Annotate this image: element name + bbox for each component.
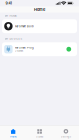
- staticText: Home: [10, 135, 16, 138]
- staticText: Settings: [61, 135, 71, 138]
- staticText: My Smart Bulb: [15, 25, 34, 28]
- staticText: Scenes: [36, 135, 43, 138]
- staticText: My Smart Plug: [15, 46, 34, 49]
- staticText: MY DEVICES: [4, 37, 22, 40]
- button[interactable]: Home: [0, 129, 26, 138]
- button[interactable]: Settings: [53, 129, 79, 138]
- staticText: MY HOME: [4, 14, 17, 17]
- button[interactable]: Scenes: [26, 129, 53, 138]
- staticText: 2 scenes: [15, 50, 23, 52]
- staticText: 9:41: [5, 1, 11, 5]
- button[interactable]: My Smart Bulb: [0, 19, 79, 33]
- staticText: Home: [34, 7, 45, 12]
- button[interactable]: My Smart Plug: [0, 42, 79, 56]
